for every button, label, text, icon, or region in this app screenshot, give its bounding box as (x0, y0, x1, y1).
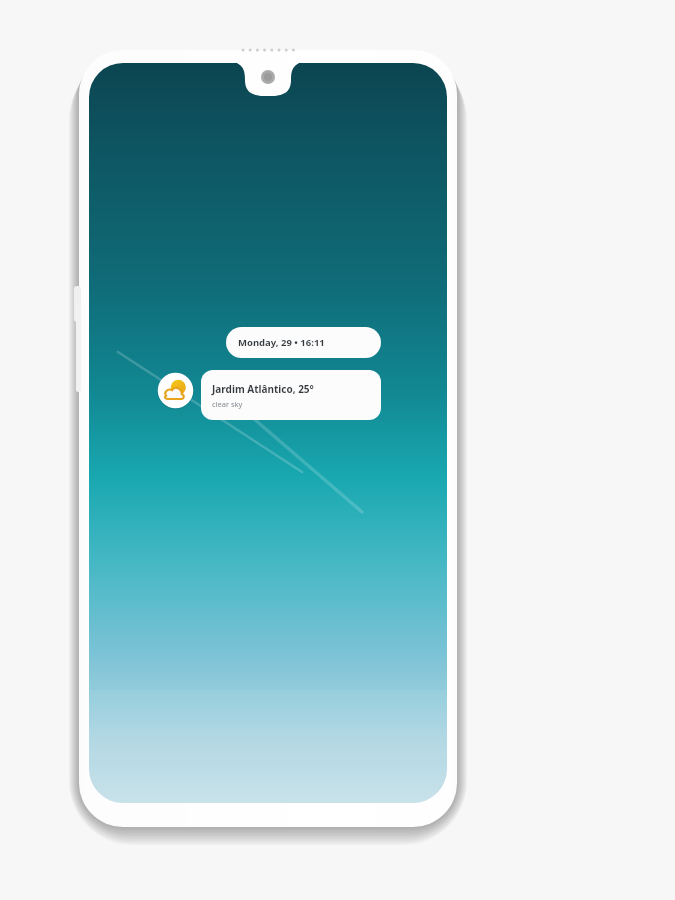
staticText: clear sky (212, 399, 243, 409)
button[interactable]: Weather: clear sky (157, 372, 194, 409)
button[interactable]: Monday, 29 • 16:11 (226, 327, 381, 358)
staticText: Monday, 29 • 16:11 (238, 336, 325, 349)
staticText: Jardim Atlântico, 25° (212, 382, 314, 396)
button[interactable]: Jardim Atlântico, 25° (201, 370, 381, 420)
